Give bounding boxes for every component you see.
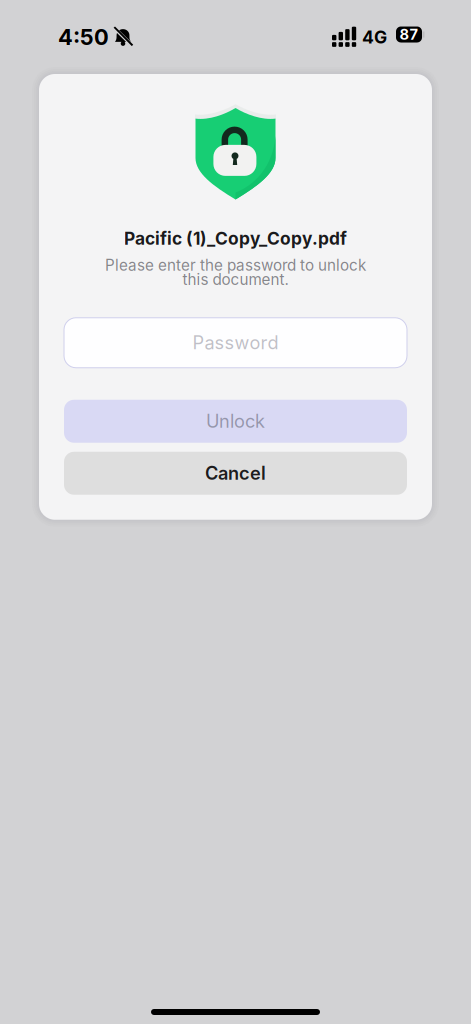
staticText: Password: [192, 332, 278, 354]
button[interactable]: Cancel: [39, 452, 432, 495]
staticText: Cancel: [205, 462, 266, 484]
staticText: Unlock: [206, 410, 265, 432]
staticText: this document.: [182, 270, 288, 289]
staticText: Please enter the password to unlock: [105, 256, 366, 274]
staticText: 4G: [362, 26, 387, 48]
staticText: 4:50: [58, 24, 109, 50]
button[interactable]: Unlock: [39, 400, 432, 443]
staticText: 87: [399, 26, 418, 43]
staticText: Pacific (1)_Copy_Copy.pdf: [124, 228, 347, 249]
